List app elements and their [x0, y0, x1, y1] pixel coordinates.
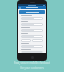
button[interactable] [21, 29, 43, 32]
staticText: for your customers [0, 66, 64, 70]
button[interactable] [21, 17, 43, 20]
staticText: Fast, secure mobile checkout [0, 61, 64, 65]
button[interactable] [32, 39, 43, 42]
button[interactable] [21, 35, 43, 38]
button[interactable] [19, 10, 45, 14]
button[interactable] [21, 51, 43, 53]
button[interactable]: Home [31, 56, 34, 59]
button[interactable] [21, 39, 31, 42]
button[interactable] [21, 23, 43, 26]
button[interactable] [21, 45, 43, 48]
button[interactable]: Menu [19, 7, 21, 9]
other: App bar [18, 6, 46, 9]
